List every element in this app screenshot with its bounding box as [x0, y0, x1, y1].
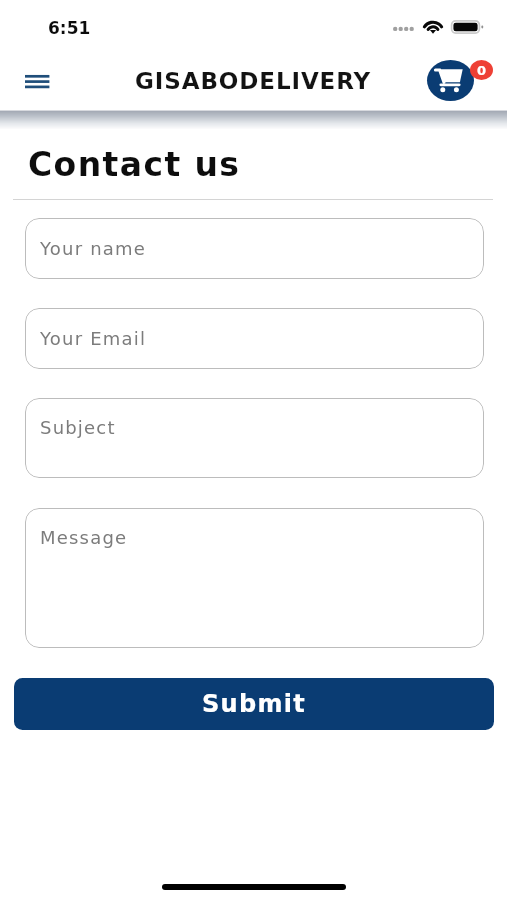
button[interactable]: Open navigation menu	[11, 59, 63, 105]
button[interactable]: Your Email	[25, 308, 484, 369]
button[interactable]: Shopping cart	[427, 60, 474, 101]
staticText: Your Email	[40, 328, 147, 349]
staticText: 0	[477, 63, 487, 78]
staticText: Your name	[40, 238, 146, 259]
button[interactable]: Subject	[25, 398, 484, 478]
staticText: GISABODELIVERY	[135, 68, 372, 95]
staticText: Subject	[40, 417, 116, 438]
staticText: Submit	[202, 690, 307, 718]
button[interactable]: Your name	[25, 218, 484, 279]
staticText: Message	[40, 527, 128, 548]
button[interactable]: Submit	[14, 678, 494, 730]
button[interactable]: Message	[25, 508, 484, 648]
staticText: 6:51	[48, 18, 91, 38]
staticText: Contact us	[28, 145, 241, 183]
